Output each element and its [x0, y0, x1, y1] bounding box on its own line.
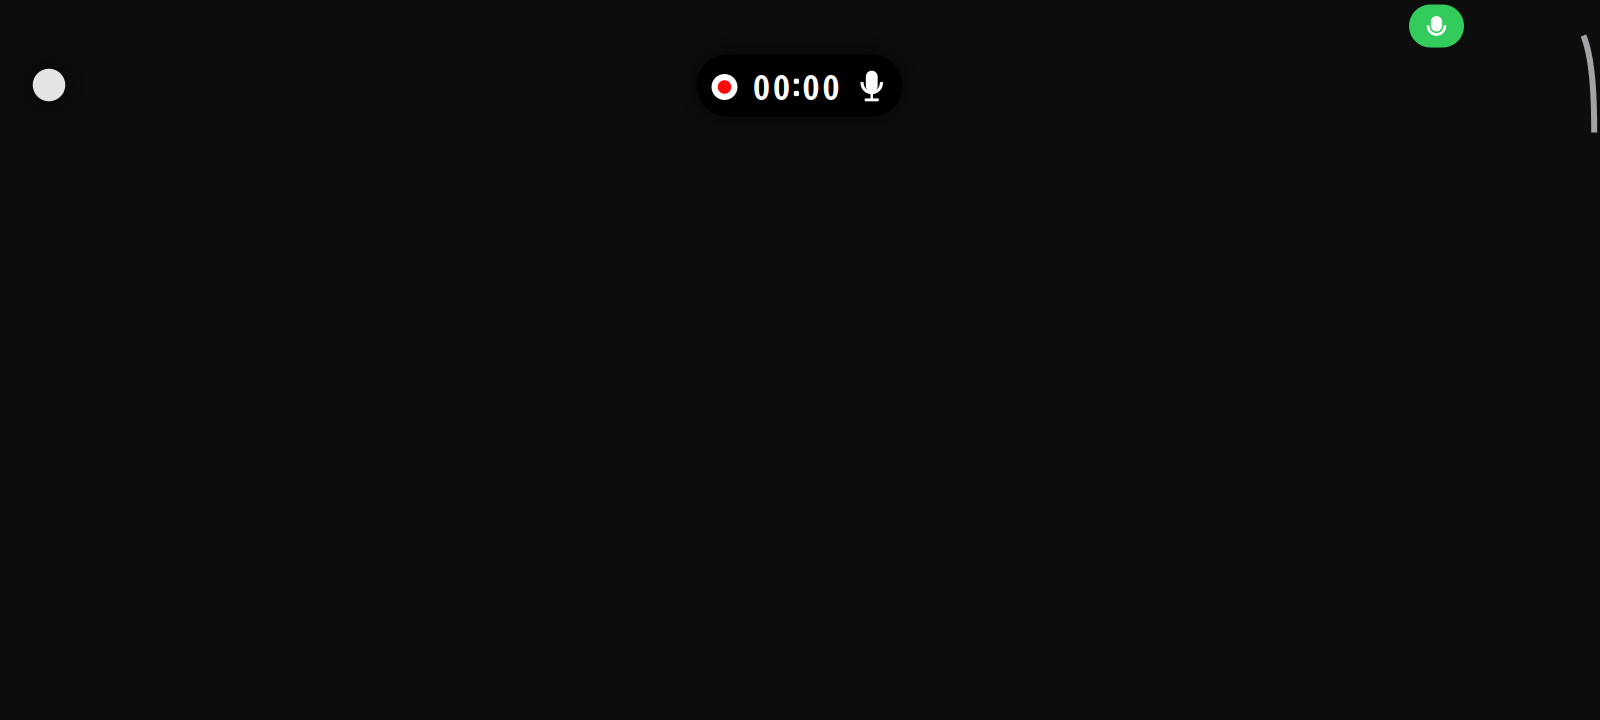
staticText: 00 — [802, 66, 839, 108]
staticText: 00 — [753, 66, 790, 108]
button[interactable]: Recording, 00:00 — [696, 54, 902, 116]
button[interactable]: Stop recording — [22, 58, 76, 112]
button[interactable]: Start new recording — [1409, 4, 1464, 47]
